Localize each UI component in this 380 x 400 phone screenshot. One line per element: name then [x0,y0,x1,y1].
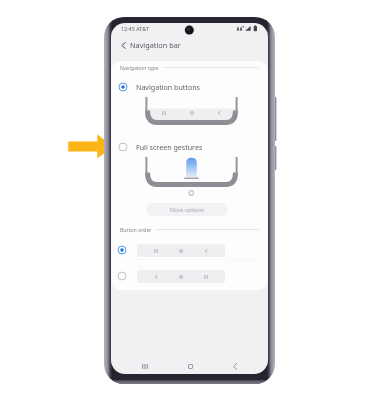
staticText: More options [170,206,204,213]
button[interactable] [111,239,268,261]
button[interactable]: Back [114,36,132,54]
button[interactable] [111,265,268,287]
button[interactable]: Full screen gestures [114,138,262,156]
staticText: Navigation bar [130,40,181,50]
button[interactable]: Navigation buttons [114,78,262,96]
staticText: 12:45 AT&T [121,25,149,32]
staticText: Navigation type [120,64,159,71]
staticText: Full screen gestures [136,142,203,152]
staticText: Button order [120,226,152,233]
staticText: Navigation buttons [136,82,200,92]
button[interactable]: More options [146,203,228,216]
button[interactable]: Home [182,358,198,374]
button[interactable]: Back [227,358,243,374]
button[interactable]: Recents [137,358,153,374]
